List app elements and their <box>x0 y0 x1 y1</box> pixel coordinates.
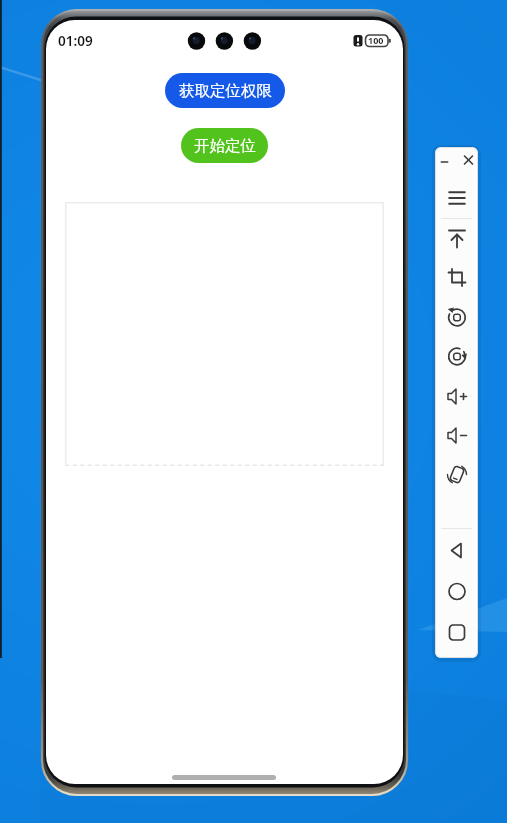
staticText: 开始定位 <box>194 136 256 156</box>
staticText: 01:09 <box>58 32 93 50</box>
button[interactable] <box>437 153 452 167</box>
button[interactable]: 开始定位 <box>181 128 268 163</box>
button[interactable] <box>444 344 470 369</box>
button[interactable] <box>444 305 470 330</box>
button[interactable]: 获取定位权限 <box>165 73 285 108</box>
button[interactable] <box>445 188 469 208</box>
button[interactable] <box>461 153 476 167</box>
button[interactable] <box>444 226 470 251</box>
button[interactable] <box>444 423 470 448</box>
button[interactable] <box>444 462 470 487</box>
staticText: 100 <box>368 34 384 46</box>
button[interactable] <box>444 579 470 604</box>
button[interactable] <box>444 384 470 409</box>
button[interactable] <box>444 265 470 290</box>
staticText: 获取定位权限 <box>179 81 272 101</box>
button[interactable] <box>444 620 470 645</box>
button[interactable] <box>444 538 470 563</box>
